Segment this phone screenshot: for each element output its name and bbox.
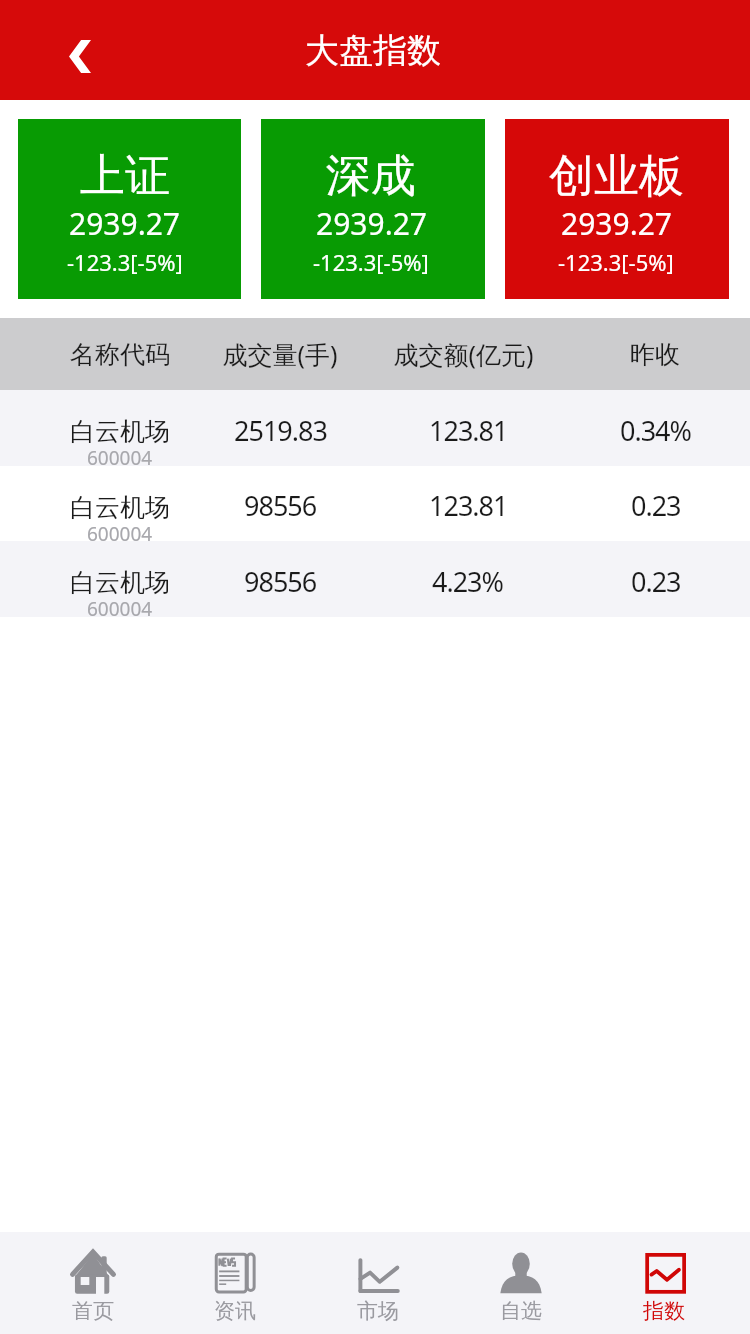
staticText: 创业板 [549, 148, 684, 205]
staticText: 600004 [87, 596, 153, 622]
button[interactable]: 指数 [592, 1232, 735, 1334]
staticText: 白云机场 [70, 567, 170, 598]
staticText: 98556 [244, 487, 317, 524]
staticText: 2939.27 [561, 203, 672, 244]
staticText: 成交量(手) [222, 337, 338, 371]
staticText: 名称代码 [70, 339, 170, 370]
staticText: 上证 [80, 148, 170, 205]
button[interactable]: 上证 [18, 119, 241, 299]
staticText: 2519.83 [234, 412, 327, 449]
staticText: 白云机场 [70, 492, 170, 523]
staticText: 市场 [357, 1298, 399, 1324]
staticText: -123.3[-5%] [313, 247, 429, 277]
staticText: 600004 [87, 521, 153, 547]
staticText: 深成 [326, 148, 416, 205]
staticText: 0.23 [631, 563, 681, 600]
staticText: 资讯 [214, 1298, 256, 1324]
staticText: 自选 [500, 1298, 542, 1324]
button[interactable]: 深成 [261, 119, 485, 299]
staticText: 2939.27 [69, 203, 180, 244]
staticText: 昨收 [630, 339, 680, 370]
button[interactable]: 白云机场 [0, 466, 750, 541]
staticText: 首页 [72, 1298, 114, 1324]
button[interactable]: Back [50, 26, 110, 86]
staticText: -123.3[-5%] [558, 247, 674, 277]
staticText: 0.34% [620, 412, 692, 449]
staticText: 0.23 [631, 487, 681, 524]
button[interactable]: 白云机场 [0, 390, 750, 466]
staticText: 成交额(亿元) [393, 337, 534, 371]
button[interactable]: 资讯 [164, 1232, 306, 1334]
button[interactable]: 自选 [449, 1232, 592, 1334]
button[interactable]: 白云机场 [0, 541, 750, 617]
button[interactable]: 首页 [22, 1232, 164, 1334]
staticText: -123.3[-5%] [67, 247, 183, 277]
staticText: 98556 [244, 563, 317, 600]
staticText: 600004 [87, 445, 153, 471]
staticText: 指数 [643, 1298, 685, 1324]
staticText: 4.23% [432, 563, 504, 600]
button[interactable]: 市场 [306, 1232, 449, 1334]
staticText: 123.81 [429, 487, 508, 524]
staticText: 白云机场 [70, 416, 170, 447]
staticText: 大盘指数 [305, 29, 441, 72]
button[interactable]: 创业板 [505, 119, 729, 299]
staticText: 123.81 [429, 412, 508, 449]
staticText: 2939.27 [316, 203, 427, 244]
